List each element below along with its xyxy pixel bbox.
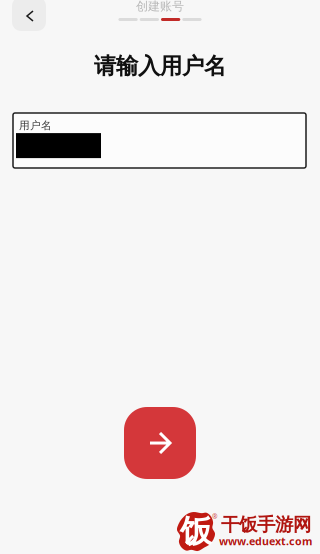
staticText: 饭 [180, 511, 212, 552]
button[interactable]: Continue [124, 407, 196, 479]
staticText: 请输入用户名 [94, 52, 226, 80]
button[interactable]: 用户名 [13, 113, 306, 168]
staticText: 用户名 [19, 119, 52, 132]
button[interactable]: Back [12, 0, 46, 31]
staticText: ® [212, 512, 218, 521]
staticText: 干饭手游网 [221, 513, 311, 536]
staticText: www.eduext.com [219, 534, 312, 548]
staticText: 创建账号 [136, 0, 184, 14]
